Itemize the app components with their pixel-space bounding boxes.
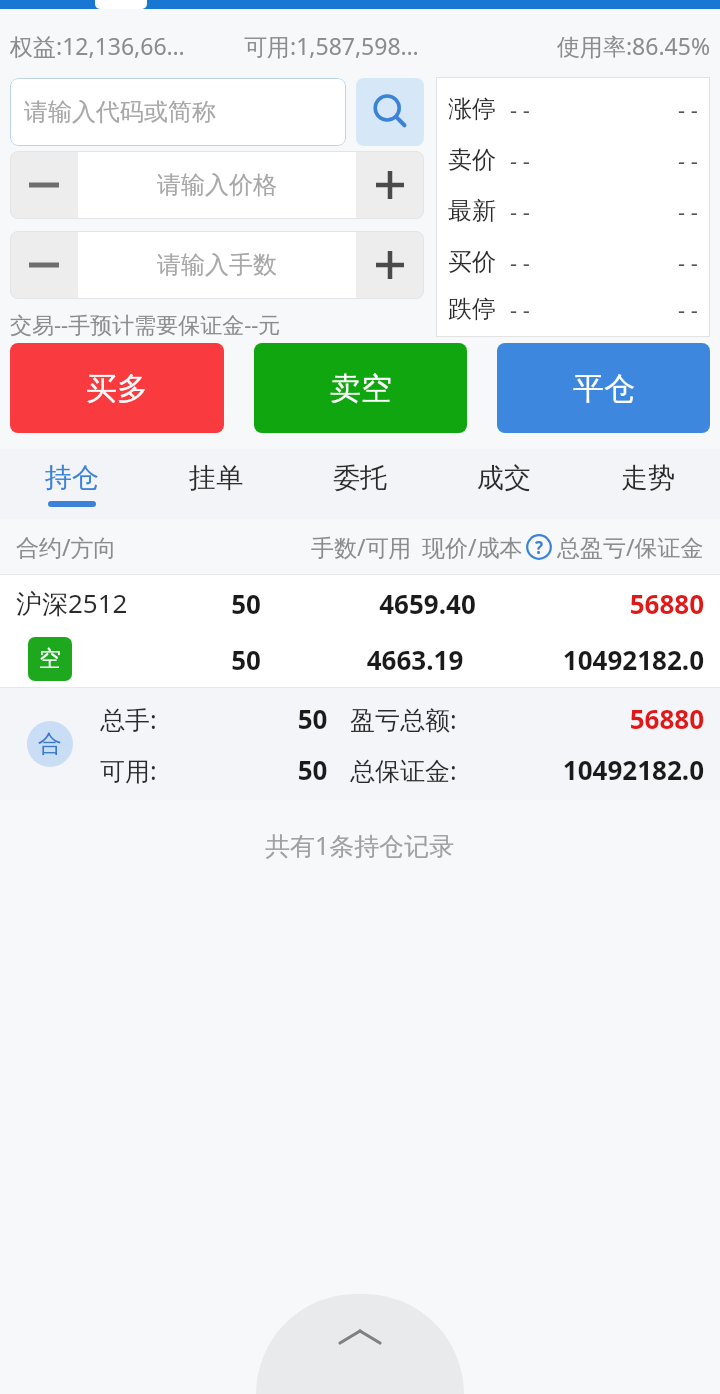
- button[interactable]: Decrease: [10, 231, 78, 299]
- staticText: 买价: [448, 247, 496, 277]
- button[interactable]: 买多: [10, 343, 224, 433]
- button[interactable]: Increase: [356, 231, 424, 299]
- staticText: 使用率:86.45%: [477, 30, 710, 61]
- staticText: 请输入代码或简称: [24, 97, 216, 127]
- staticText: ?: [535, 536, 544, 559]
- staticText: - -: [678, 196, 698, 226]
- staticText: - -: [678, 94, 698, 124]
- staticText: - -: [510, 294, 530, 324]
- button[interactable]: 平仓: [497, 343, 710, 433]
- button[interactable]: 请输入代码或简称: [10, 78, 346, 146]
- button[interactable]: 成交: [432, 449, 576, 519]
- staticText: - -: [510, 145, 530, 175]
- staticText: 请输入手数: [157, 250, 277, 280]
- staticText: 请输入价格: [157, 170, 277, 200]
- staticText: 持仓: [45, 461, 99, 495]
- button[interactable]: Decrease: [10, 151, 78, 219]
- staticText: 10492182.0: [562, 752, 704, 787]
- staticText: 可用:: [100, 753, 275, 787]
- button[interactable]: 涨停: [448, 83, 698, 134]
- staticText: - -: [510, 196, 530, 226]
- staticText: 50: [275, 752, 350, 787]
- staticText: 空: [39, 645, 61, 673]
- button[interactable]: 最新: [448, 185, 698, 236]
- staticText: 56880: [629, 701, 704, 736]
- staticText: 权益:12,136,66…: [10, 30, 244, 61]
- button[interactable]: 请输入价格: [78, 151, 356, 219]
- staticText: 卖价: [448, 145, 496, 175]
- button[interactable]: 买价: [448, 236, 698, 287]
- staticText: 总盈亏/保证金: [557, 531, 704, 562]
- staticText: 委托: [333, 461, 387, 495]
- staticText: 成交: [477, 461, 531, 495]
- button[interactable]: 跌停: [448, 287, 698, 331]
- staticText: 50: [275, 701, 350, 736]
- staticText: 交易--手预计需要保证金--元: [10, 309, 281, 337]
- staticText: 手数/可用: [311, 531, 412, 562]
- staticText: - -: [678, 247, 698, 277]
- staticText: 50: [191, 586, 301, 621]
- staticText: 买多: [86, 369, 148, 408]
- button[interactable]: 走势: [576, 449, 720, 519]
- staticText: 总手:: [100, 702, 275, 736]
- staticText: 涨停: [448, 94, 496, 124]
- staticText: 平仓: [573, 369, 635, 408]
- button[interactable]: Search: [356, 78, 424, 146]
- staticText: 4659.40: [301, 586, 554, 621]
- staticText: - -: [510, 247, 530, 277]
- staticText: - -: [678, 294, 698, 324]
- staticText: 56880: [554, 586, 704, 621]
- button[interactable]: 持仓: [0, 449, 144, 519]
- staticText: 合: [38, 729, 62, 759]
- staticText: - -: [678, 145, 698, 175]
- staticText: 50: [191, 642, 301, 677]
- staticText: 总保证金:: [350, 753, 562, 787]
- staticText: 10492182.0: [529, 642, 704, 677]
- staticText: 4663.19: [301, 642, 529, 677]
- staticText: 沪深2512: [16, 585, 191, 621]
- button[interactable]: 卖空: [254, 343, 467, 433]
- button[interactable]: Increase: [356, 151, 424, 219]
- staticText: 卖空: [330, 369, 392, 408]
- staticText: 跌停: [448, 294, 496, 324]
- button[interactable]: 委托: [288, 449, 432, 519]
- staticText: 现价/成本: [422, 531, 523, 562]
- staticText: 盈亏总额:: [350, 702, 629, 736]
- staticText: 合约/方向: [16, 531, 117, 562]
- button[interactable]: Expand: [256, 1294, 464, 1394]
- staticText: 挂单: [189, 461, 243, 495]
- button[interactable]: 合: [0, 688, 720, 800]
- staticText: - -: [510, 94, 530, 124]
- staticText: 共有1条持仓记录: [265, 828, 455, 862]
- staticText: 走势: [621, 461, 675, 495]
- button[interactable]: 请输入手数: [78, 231, 356, 299]
- staticText: 可用:1,587,598…: [244, 30, 477, 61]
- button[interactable]: 挂单: [144, 449, 288, 519]
- staticText: 最新: [448, 196, 496, 226]
- button[interactable]: 卖价: [448, 134, 698, 185]
